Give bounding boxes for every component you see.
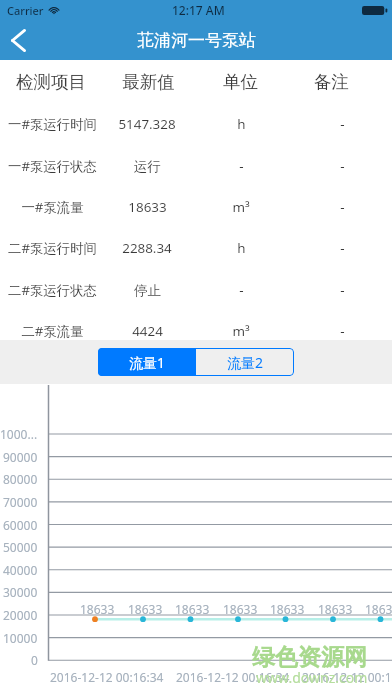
staticText: 18633	[223, 601, 258, 615]
staticText: 运行	[134, 158, 161, 175]
staticText: 单位	[223, 71, 258, 93]
staticText: 18633	[270, 601, 305, 615]
staticText: 2016-12-12 00:16:34	[50, 669, 164, 685]
staticText: 80000	[3, 471, 38, 487]
staticText: 18633	[80, 601, 115, 615]
staticText: 检测项目	[16, 71, 86, 93]
staticText: 20000	[3, 607, 38, 623]
staticText: 绿色资源网	[252, 643, 367, 669]
staticText: m³	[232, 198, 250, 216]
staticText: -	[340, 281, 345, 299]
staticText: 30000	[3, 584, 38, 600]
staticText: 二#泵运行时间	[8, 239, 97, 257]
staticText: -	[239, 157, 244, 175]
staticText: m³	[232, 322, 250, 340]
staticText: Carrier	[7, 3, 44, 18]
staticText: -	[340, 198, 345, 216]
staticText: 0	[31, 652, 38, 668]
staticText: 二#泵流量	[21, 322, 84, 340]
staticText: 一#泵运行状态	[8, 157, 97, 175]
staticText: 90000	[3, 449, 38, 465]
staticText: 苝浦河一号泵站	[137, 30, 256, 51]
staticText: 一#泵运行时间	[8, 115, 97, 133]
staticText: 40000	[3, 562, 38, 578]
staticText: 60000	[3, 517, 38, 533]
staticText: 备注	[314, 71, 349, 93]
staticText: 1000...	[0, 426, 38, 442]
staticText: 停止	[134, 282, 161, 299]
staticText: h	[237, 239, 246, 257]
staticText: 70000	[3, 494, 38, 510]
button[interactable]: 流量2	[196, 348, 294, 376]
staticText: 18633	[365, 601, 392, 615]
staticText: 50000	[3, 539, 38, 555]
staticText: -	[340, 115, 345, 133]
staticText: 5147.328	[118, 115, 176, 133]
staticText: 流量2	[227, 353, 264, 372]
staticText: 2288.34	[122, 239, 172, 257]
staticText: -	[340, 239, 345, 257]
staticText: 12:17 AM	[172, 2, 225, 18]
staticText: -	[340, 157, 345, 175]
staticText: 2016-12-12 00:16:34	[302, 669, 392, 685]
button[interactable]: Back	[0, 20, 36, 60]
staticText: www.downz.com	[256, 668, 368, 686]
staticText: 10000	[3, 630, 38, 646]
button[interactable]: 流量1	[98, 348, 196, 376]
staticText: 最新值	[122, 71, 175, 93]
staticText: 18633	[318, 601, 353, 615]
staticText: 18633	[128, 601, 163, 615]
staticText: 2016-12-12 00:16:34	[176, 669, 290, 685]
staticText: 二#泵运行状态	[8, 281, 97, 299]
staticText: 4424	[132, 322, 163, 340]
staticText: h	[237, 115, 246, 133]
staticText: 一#泵流量	[21, 198, 84, 216]
staticText: -	[239, 281, 244, 299]
staticText: 18633	[175, 601, 210, 615]
staticText: -	[340, 322, 345, 340]
staticText: 流量1	[129, 353, 166, 372]
staticText: 18633	[128, 198, 167, 216]
